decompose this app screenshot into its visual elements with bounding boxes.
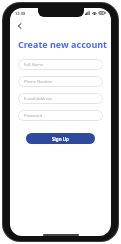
button[interactable]: Phone Number [18, 76, 103, 87]
button[interactable]: E-mail Address [18, 93, 103, 104]
button[interactable]: Full Name [18, 59, 103, 70]
button[interactable]: Sign Up [26, 133, 95, 144]
staticText: E-mail Address [24, 96, 52, 101]
staticText: Sign Up [52, 136, 69, 142]
staticText: Create new account [18, 38, 108, 50]
staticText: Phone Number [24, 79, 53, 84]
button[interactable]: Back [13, 19, 27, 33]
staticText: 12:08 [15, 11, 26, 16]
staticText: Password [24, 113, 43, 118]
button[interactable]: Password [18, 110, 103, 121]
staticText: Full Name [24, 62, 43, 67]
